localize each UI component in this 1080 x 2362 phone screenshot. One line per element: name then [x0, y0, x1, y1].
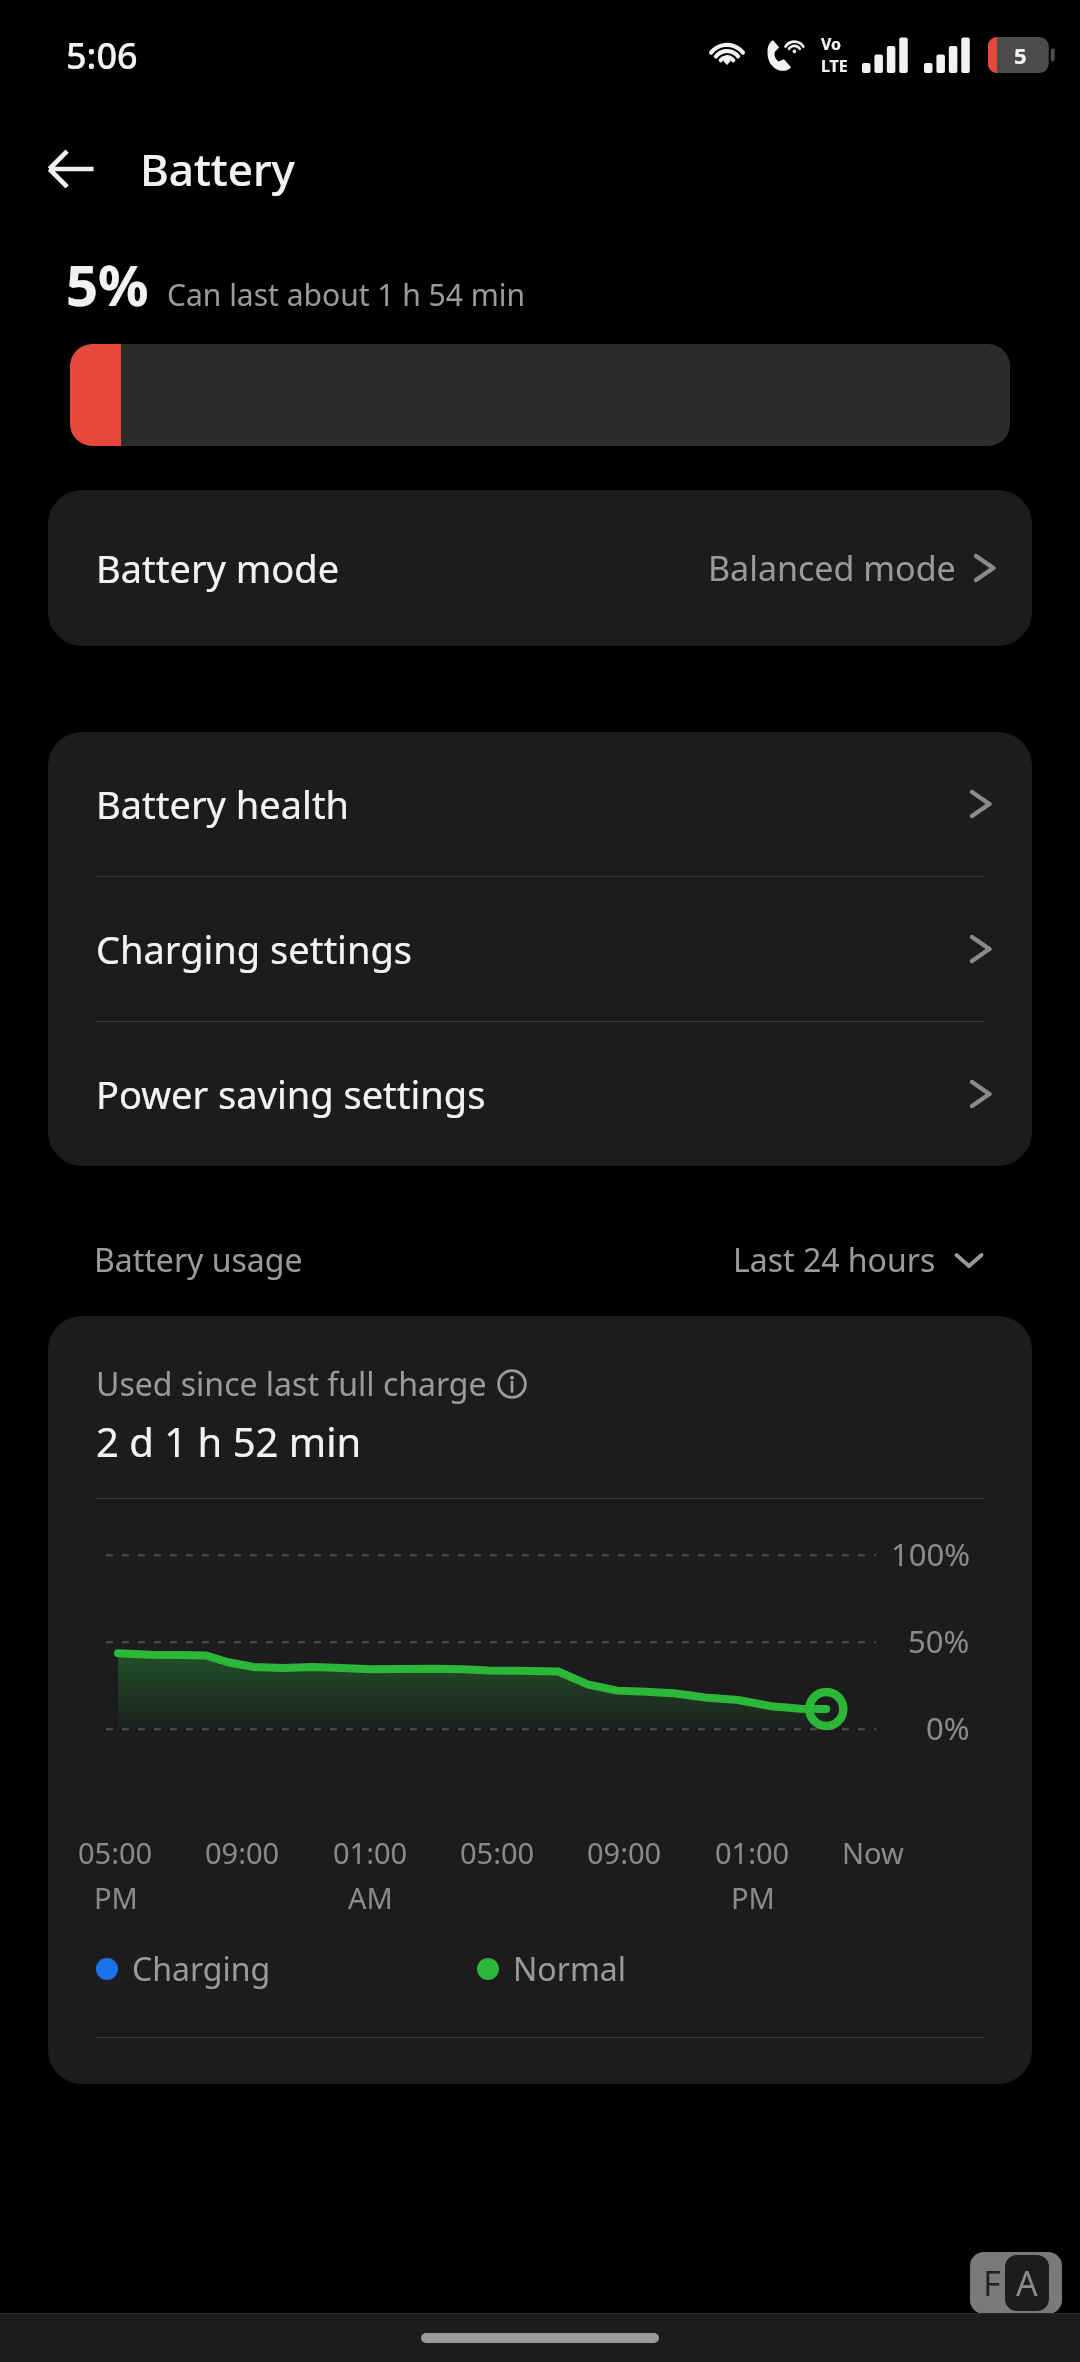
staticText: Battery	[140, 139, 295, 199]
button[interactable]: Power saving settings	[48, 1022, 1032, 1166]
staticText: 100%	[891, 1533, 970, 1575]
staticText: PM	[731, 1878, 775, 1917]
staticText: Last 24 hours	[733, 1238, 936, 1282]
staticText: 09:00	[205, 1833, 280, 1872]
staticText: Balanced mode	[708, 545, 956, 591]
staticText: 5%	[66, 246, 149, 322]
staticText: 5:06	[66, 31, 138, 80]
staticText: 05:00	[78, 1833, 153, 1872]
staticText: 01:00	[333, 1833, 408, 1872]
staticText: 2 d 1 h 52 min	[96, 1414, 362, 1468]
staticText: LTE	[821, 55, 848, 77]
staticText: 5	[1014, 40, 1027, 70]
staticText: Battery usage	[94, 1238, 303, 1282]
staticText: Now	[842, 1833, 904, 1872]
staticText: 0%	[926, 1707, 970, 1749]
staticText: F	[983, 2260, 1001, 2306]
button[interactable]: Last 24 hours	[725, 1230, 992, 1290]
staticText: A	[1016, 2260, 1038, 2306]
button[interactable]: Back	[28, 126, 114, 212]
staticText: Charging settings	[96, 923, 412, 975]
staticText: 05:00	[460, 1833, 535, 1872]
staticText: 01:00	[715, 1833, 790, 1872]
staticText: Battery mode	[96, 542, 340, 594]
staticText: 50%	[908, 1620, 970, 1662]
button[interactable]: Floating assistant	[970, 2252, 1062, 2314]
staticText: Battery health	[96, 778, 350, 830]
button[interactable]: Battery mode	[48, 490, 1032, 646]
staticText: Normal	[513, 1947, 627, 1991]
staticText: Power saving settings	[96, 1068, 486, 1120]
button[interactable]: Charging settings	[48, 877, 1032, 1022]
button[interactable]: Battery health	[48, 732, 1032, 877]
staticText: Charging	[132, 1947, 271, 1991]
staticText: AM	[348, 1878, 393, 1917]
staticText: Can last about 1 h 54 min	[167, 274, 526, 315]
staticText: PM	[94, 1878, 138, 1917]
staticText: Used since last full charge	[96, 1362, 487, 1406]
staticText: Vo	[821, 33, 842, 55]
staticText: 09:00	[587, 1833, 662, 1872]
